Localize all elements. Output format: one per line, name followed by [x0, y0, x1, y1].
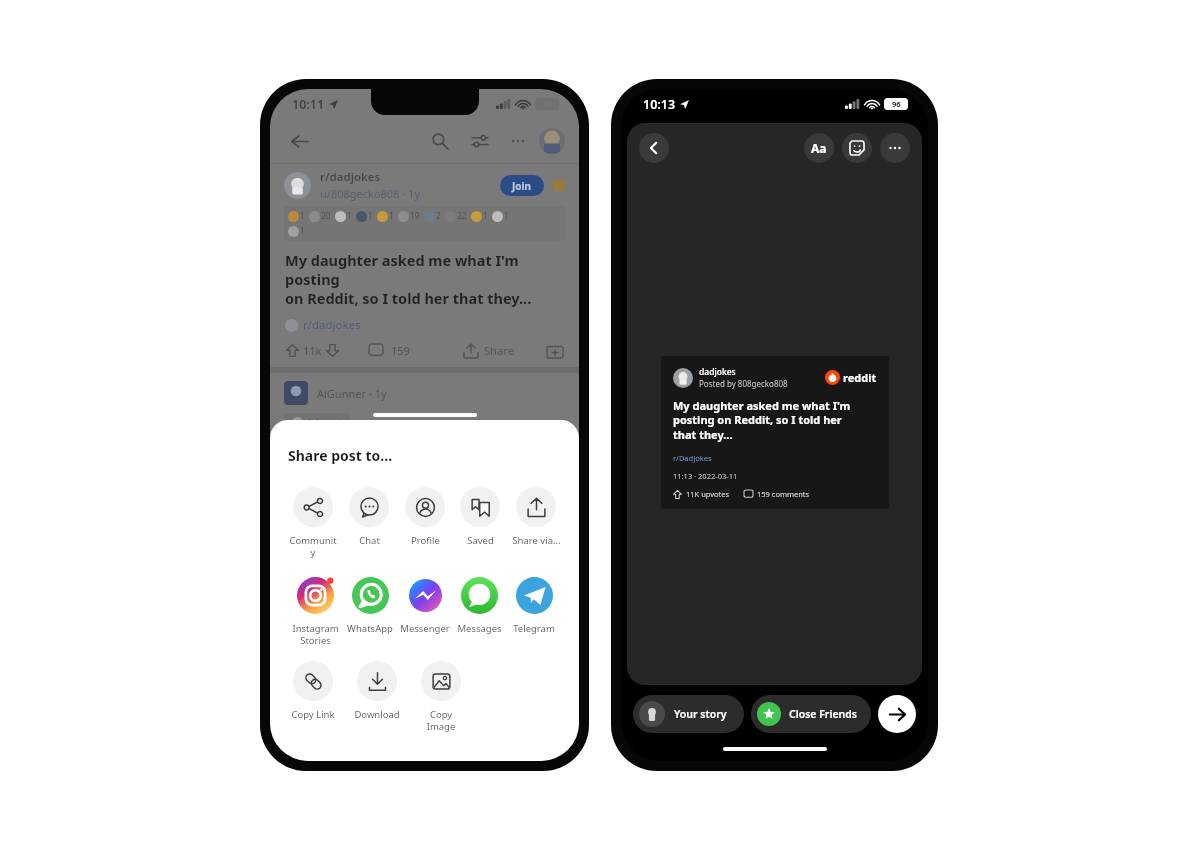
- staticText: Telegram: [513, 622, 555, 635]
- staticText: 1: [300, 210, 305, 222]
- staticText: 1 Award: [307, 416, 342, 428]
- button[interactable]: Community: [288, 487, 338, 559]
- staticText: Chat: [359, 534, 380, 547]
- staticText: Download: [354, 708, 400, 721]
- button[interactable]: Your story: [633, 695, 744, 733]
- staticText: Aa: [811, 140, 827, 156]
- staticText: 96: [892, 99, 901, 109]
- staticText: 22: [457, 210, 467, 222]
- staticText: 1: [483, 210, 488, 222]
- staticText: reddit: [843, 370, 877, 385]
- staticText: Community: [288, 534, 338, 559]
- staticText: 10:13: [643, 96, 676, 113]
- staticText: 20: [321, 210, 331, 222]
- staticText: 159: [391, 343, 410, 358]
- button[interactable]: Award: [547, 342, 563, 358]
- button[interactable]: 159: [369, 343, 410, 358]
- staticText: Messages: [457, 622, 502, 635]
- staticText: 10:11: [292, 96, 325, 113]
- staticText: 11K upvotes: [686, 489, 730, 499]
- button[interactable]: More options: [880, 133, 910, 163]
- staticText: WhatsApp: [347, 622, 393, 635]
- button[interactable]: Join: [500, 175, 544, 196]
- button[interactable]: Copy Link: [288, 661, 338, 721]
- staticText: 1: [300, 225, 305, 237]
- staticText: Saved: [467, 534, 494, 547]
- staticText: Instagram Stories: [292, 622, 339, 647]
- button[interactable]: Instagram Stories: [288, 575, 342, 647]
- staticText: r/dadjokes: [320, 169, 381, 185]
- button[interactable]: Messages: [452, 575, 506, 635]
- button[interactable]: Share via...: [511, 487, 561, 547]
- button[interactable]: 11k: [286, 343, 339, 358]
- staticText: u/808gecko808 · 1y: [320, 186, 420, 201]
- staticText: Copy Link: [291, 708, 335, 721]
- button[interactable]: Chat: [344, 487, 394, 547]
- staticText: Join: [512, 179, 532, 193]
- button[interactable]: Saved: [455, 487, 505, 547]
- staticText: AlGunner · 1y: [317, 386, 387, 401]
- staticText: 159 comments: [757, 489, 810, 499]
- button[interactable]: Messenger: [398, 575, 452, 635]
- staticText: Copy Image: [416, 708, 466, 733]
- staticText: Close Friends: [789, 707, 857, 721]
- staticText: 2: [436, 210, 441, 222]
- staticText: r/dadjokes: [303, 317, 361, 333]
- staticText: 1: [389, 210, 394, 222]
- button[interactable]: Telegram: [507, 575, 561, 635]
- button[interactable]: Profile: [539, 128, 565, 154]
- staticText: 1: [368, 210, 373, 222]
- button[interactable]: Profile: [400, 487, 450, 547]
- staticText: 1: [347, 210, 352, 222]
- staticText: Share via...: [512, 534, 561, 547]
- button[interactable]: Close Friends: [751, 695, 871, 733]
- staticText: Profile: [411, 534, 440, 547]
- button[interactable]: Back: [639, 133, 669, 163]
- button[interactable]: Text style: [804, 133, 834, 163]
- staticText: 19: [410, 210, 420, 222]
- staticText: Share post to...: [288, 446, 393, 465]
- staticText: My daughter asked me what I'm posting on…: [285, 250, 564, 308]
- button[interactable]: Back: [284, 126, 314, 156]
- staticText: My daughter asked me what I'm posting on…: [673, 398, 851, 443]
- staticText: 11k: [303, 343, 322, 358]
- staticText: Your story: [674, 707, 727, 721]
- button[interactable]: Sort: [465, 126, 495, 156]
- staticText: Messenger: [400, 622, 450, 635]
- staticText: 96: [543, 99, 552, 109]
- button[interactable]: Copy Image: [416, 661, 466, 733]
- button[interactable]: More options: [503, 126, 533, 156]
- staticText: Share: [484, 343, 514, 358]
- staticText: Posted by 808gecko808: [699, 378, 788, 389]
- button[interactable]: Stickers: [842, 133, 872, 163]
- staticText: dadjokes: [699, 366, 736, 378]
- button[interactable]: Share: [464, 343, 514, 358]
- button[interactable]: Search: [425, 126, 455, 156]
- staticText: 1: [504, 210, 509, 222]
- button[interactable]: Download: [352, 661, 402, 721]
- button[interactable]: WhatsApp: [343, 575, 397, 635]
- staticText: r/DadJokes: [673, 453, 712, 463]
- staticText: 11:13 · 2022-03-11: [673, 471, 738, 481]
- button[interactable]: Send: [878, 695, 916, 733]
